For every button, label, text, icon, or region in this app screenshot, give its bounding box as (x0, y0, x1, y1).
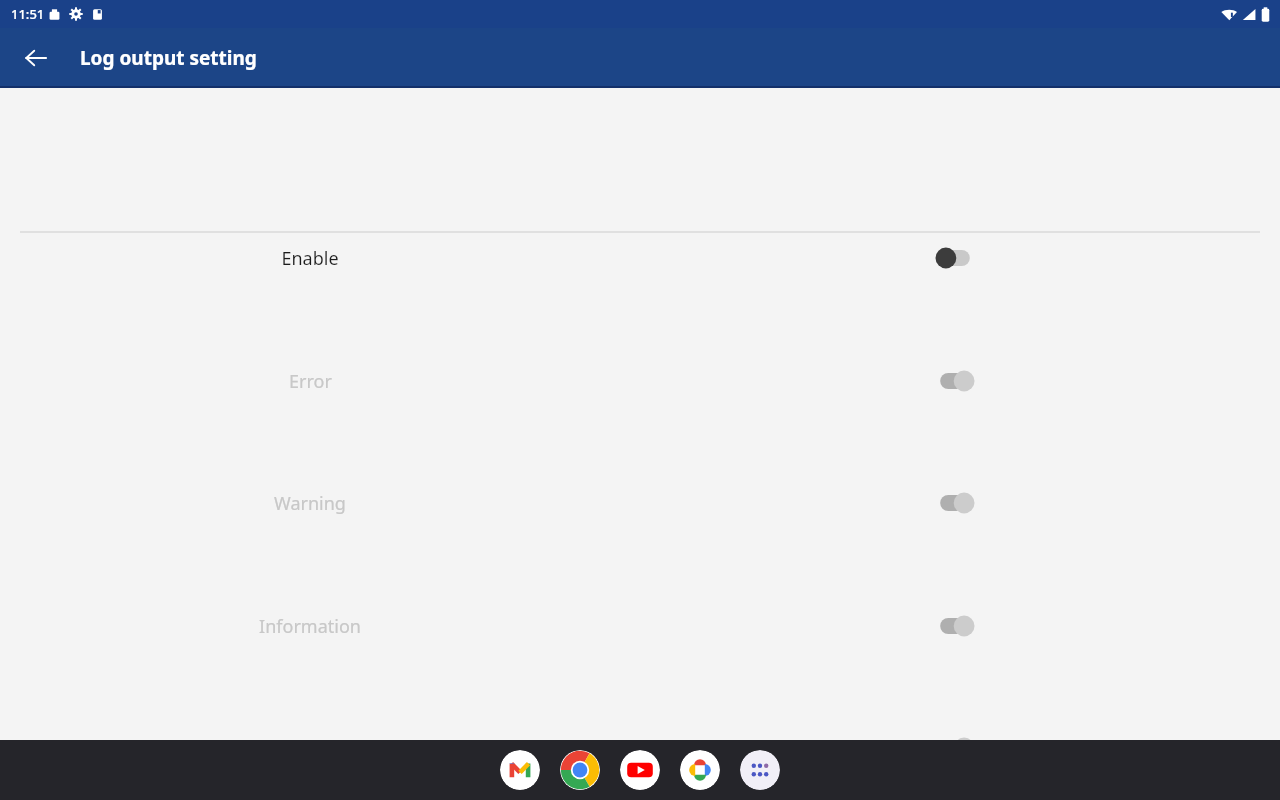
staticText: Error (289, 369, 332, 394)
staticText: Log output setting (80, 45, 257, 71)
button[interactable]: Photos (680, 750, 720, 790)
button[interactable]: Chrome (560, 750, 600, 790)
staticText: Debug (282, 736, 339, 761)
button[interactable]: Error (0, 351, 1280, 411)
staticText: Warning (274, 491, 346, 516)
button[interactable]: Information (0, 596, 1280, 656)
button[interactable]: Debug (0, 718, 1280, 778)
button[interactable]: All apps (740, 750, 780, 790)
button[interactable]: YouTube (620, 750, 660, 790)
button[interactable]: Enable (0, 228, 1280, 288)
staticText: 11:51 (11, 5, 45, 23)
button[interactable]: Back (12, 34, 60, 82)
button[interactable]: Warning (0, 473, 1280, 533)
staticText: Enable (281, 246, 339, 271)
button[interactable]: Gmail (500, 750, 540, 790)
staticText: Information (259, 614, 361, 639)
